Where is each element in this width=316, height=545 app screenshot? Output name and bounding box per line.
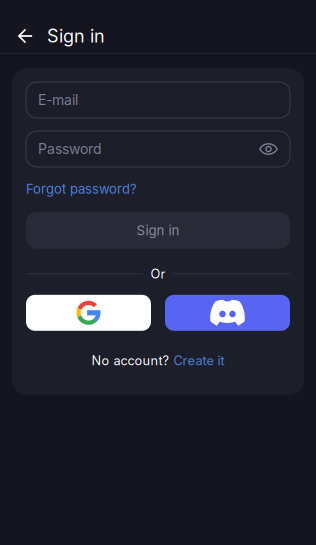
staticText: Or bbox=[150, 266, 165, 282]
staticText: E-mail bbox=[38, 91, 78, 108]
staticText: Create it bbox=[173, 353, 224, 368]
staticText: No account? bbox=[91, 353, 173, 368]
button[interactable]: Show password bbox=[259, 141, 278, 156]
staticText: Sign in bbox=[136, 222, 179, 238]
button[interactable]: Sign in with Google bbox=[26, 295, 151, 331]
staticText: Sign in bbox=[47, 25, 105, 47]
button[interactable]: Create it bbox=[173, 353, 224, 368]
button[interactable]: Back bbox=[4, 17, 47, 55]
staticText: Password bbox=[38, 140, 102, 157]
button[interactable]: Forgot password? bbox=[26, 181, 290, 197]
button[interactable]: Sign in bbox=[26, 212, 290, 249]
button[interactable]: Sign in with Discord bbox=[165, 295, 290, 331]
staticText: Forgot password? bbox=[26, 181, 137, 197]
